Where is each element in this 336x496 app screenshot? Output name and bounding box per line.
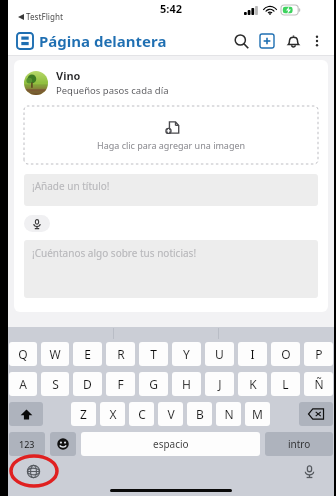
staticText: intro [288,437,311,451]
button[interactable]: M [245,402,270,426]
staticText: F [117,376,124,392]
staticText: S [52,376,59,392]
button[interactable]: ¡Cuéntanos algo sobre tus noticias! [24,240,318,298]
staticText: Haga clic para agregar una imagen [97,139,246,151]
staticText: ¡Cuéntanos algo sobre tus noticias! [32,246,197,260]
button[interactable]: O [271,342,300,366]
button[interactable]: A [9,372,37,396]
button[interactable]: espacio [81,432,260,456]
button[interactable]: S [41,372,69,396]
button[interactable]: T [139,342,168,366]
staticText: O [281,346,291,362]
button[interactable]: ¡Añade un título! [24,174,318,206]
button[interactable]: Página delantera [17,31,167,51]
button[interactable]: 123 [9,432,45,456]
staticText: Página delantera [39,31,167,51]
button[interactable]: P [304,342,333,366]
button[interactable]: Mayúsculas [9,402,43,426]
button[interactable]: Dictado [298,460,320,482]
staticText: N [224,406,234,422]
staticText: Z [80,406,87,422]
button[interactable]: W [41,342,69,366]
staticText: R [117,346,125,362]
staticText: TestFlight [26,11,64,22]
button[interactable]: L [271,372,300,396]
button[interactable]: Borrar [299,402,333,426]
button[interactable]: B [187,402,212,426]
staticText: 123 [19,438,35,450]
button[interactable]: K [238,372,267,396]
button[interactable]: E [73,342,102,366]
staticText: Ñ [314,376,324,392]
button[interactable]: Agregar una imagen [24,106,318,164]
staticText: J [218,376,222,392]
staticText: B [196,406,204,422]
button[interactable]: G [139,372,168,396]
button[interactable]: Y [172,342,201,366]
button[interactable]: Dictar por voz [24,215,50,232]
button[interactable]: R [106,342,135,366]
button[interactable]: U [205,342,234,366]
staticText: Y [183,346,190,362]
staticText: C [138,406,146,422]
button[interactable]: Agregar [254,28,280,54]
staticText: 5:42 [160,1,182,16]
staticText: V [167,406,175,422]
button[interactable]: N [216,402,241,426]
staticText: espacio [153,437,189,451]
staticText: T [150,346,157,362]
button[interactable]: V [158,402,183,426]
button[interactable]: C [129,402,154,426]
staticText: ¡Añade un título! [32,179,110,193]
staticText: P [315,346,323,362]
staticText: H [182,376,191,392]
button[interactable]: Emoji [50,432,76,456]
button[interactable]: Notificaciones [280,28,306,54]
button[interactable]: Cambiar idioma del teclado [22,460,44,482]
staticText: U [215,346,224,362]
staticText: I [250,346,255,362]
button[interactable]: X [100,402,125,426]
button[interactable]: I [238,342,267,366]
staticText: X [109,406,117,422]
button[interactable]: Z [71,402,96,426]
staticText: Pequeños pasos cada día [56,84,169,97]
button[interactable]: J [205,372,234,396]
button[interactable]: D [73,372,102,396]
staticText: M [252,406,263,422]
staticText: D [83,376,92,392]
button[interactable]: Más opciones [306,30,328,52]
staticText: W [49,346,61,362]
button[interactable]: Buscar [228,28,254,54]
staticText: L [282,376,289,392]
staticText: G [149,376,158,392]
button[interactable]: Q [9,342,37,366]
button[interactable]: intro [265,432,333,456]
staticText: K [249,376,257,392]
button[interactable]: H [172,372,201,396]
staticText: Q [18,346,28,362]
staticText: A [19,376,27,392]
button[interactable]: Ñ [304,372,333,396]
staticText: E [84,346,91,362]
button[interactable]: F [106,372,135,396]
staticText: Vino [56,68,81,83]
